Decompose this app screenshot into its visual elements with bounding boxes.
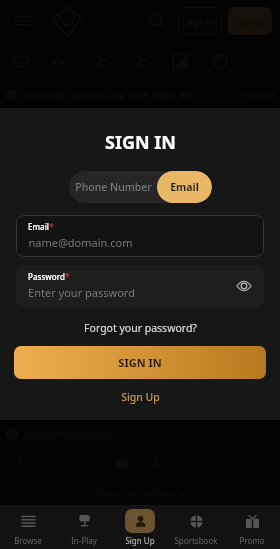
staticText: Promo	[239, 535, 265, 546]
staticText: Sign Up	[125, 535, 155, 546]
button[interactable]: Sign up	[228, 7, 272, 35]
staticText: In-Play	[71, 535, 97, 546]
staticText: Email	[28, 221, 49, 232]
staticText: SIGN IN	[118, 355, 162, 370]
staticText: Phone Number	[75, 180, 152, 194]
staticText: Sign in	[185, 15, 215, 27]
button[interactable]: Phone Number	[69, 171, 157, 203]
staticText: Forgot your password?	[84, 321, 197, 335]
staticText: Sign Up	[121, 390, 160, 404]
staticText: Browse	[14, 535, 42, 546]
button[interactable]: Email	[157, 171, 212, 203]
button[interactable]: Sign in	[178, 7, 222, 35]
button[interactable]: Sportsbook	[168, 505, 224, 549]
staticText: Sportsbook	[174, 535, 218, 546]
staticText: SIGN IN	[105, 130, 176, 155]
button[interactable]: Show password	[234, 276, 254, 296]
button[interactable]: In-Play	[56, 505, 112, 549]
staticText: Enter your password	[28, 285, 135, 300]
button[interactable]: Promo	[224, 505, 280, 549]
button[interactable]: Browse	[0, 505, 56, 549]
button[interactable]: SIGN IN	[14, 346, 266, 379]
staticText: Email	[170, 180, 199, 194]
staticText: *	[49, 221, 54, 232]
button[interactable]: Password	[16, 265, 264, 307]
staticText: *	[65, 271, 70, 282]
button[interactable]: Forgot your password?	[0, 321, 280, 335]
staticText: Sign up	[234, 15, 267, 27]
button[interactable]: Email	[16, 215, 264, 257]
staticText: 2	[152, 455, 158, 469]
staticText: Password	[28, 271, 65, 282]
staticText: name@domain.com	[28, 235, 133, 250]
button[interactable]: Sign Up	[0, 390, 280, 404]
button[interactable]: Sign Up	[112, 505, 168, 549]
